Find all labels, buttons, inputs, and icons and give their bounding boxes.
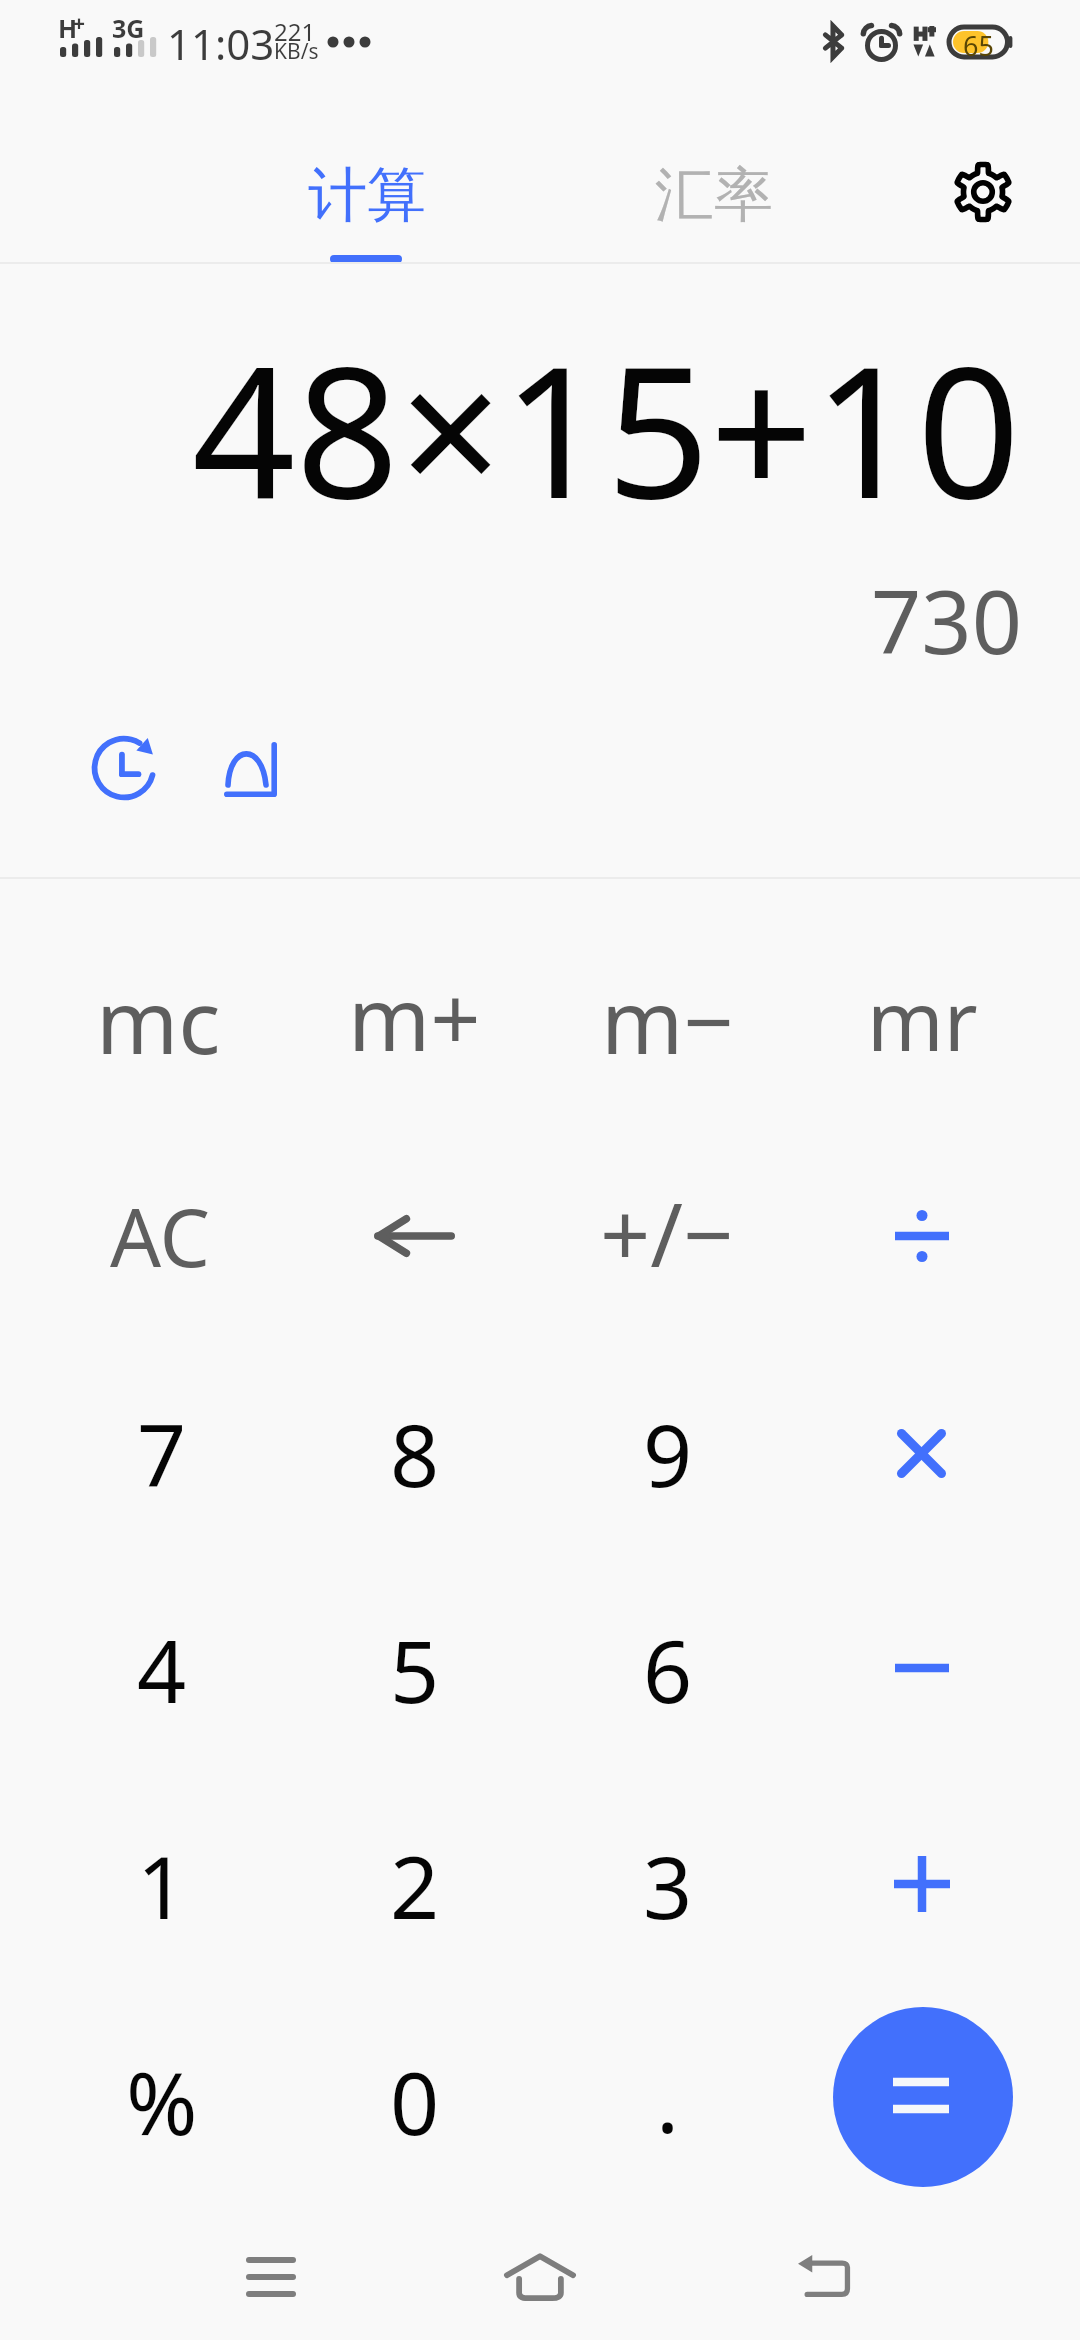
staticText: AC (110, 1181, 211, 1290)
button[interactable]: 0 (288, 1994, 541, 2208)
staticText: 9 (643, 1395, 693, 1512)
staticText: 7 (137, 1395, 187, 1512)
staticText: 1 (137, 1827, 187, 1944)
staticText: + (73, 9, 86, 38)
button[interactable]: 5 (288, 1562, 541, 1776)
staticText: . (656, 2041, 680, 2158)
staticText: mr (867, 963, 978, 1075)
staticText: 3G (112, 11, 145, 45)
button[interactable]: . (541, 1994, 794, 2208)
button[interactable]: 6 (541, 1562, 794, 1776)
staticText: H (58, 11, 78, 45)
button[interactable]: 汇率 (593, 104, 833, 284)
button[interactable]: 8 (288, 1346, 541, 1560)
button[interactable]: +/− (541, 1129, 794, 1343)
button[interactable]: Subtract (795, 1561, 1048, 1775)
staticText: 汇率 (655, 158, 773, 232)
staticText: 11:03 (167, 15, 275, 72)
button[interactable]: m+ (288, 922, 541, 1136)
staticText: KB/s (274, 37, 319, 66)
button[interactable]: Backspace (288, 1129, 541, 1343)
staticText: 4 (137, 1611, 187, 1728)
button[interactable]: mc (35, 922, 288, 1136)
button[interactable]: Recents (197, 2203, 345, 2340)
button[interactable]: Settings (925, 134, 1041, 250)
staticText: 730 (871, 560, 1023, 680)
staticText: m− (601, 960, 734, 1080)
staticText: 6 (643, 1611, 693, 1728)
button[interactable]: Multiply (795, 1346, 1048, 1560)
button[interactable]: Home (466, 2203, 614, 2340)
button[interactable]: 计算 (246, 104, 486, 284)
button[interactable]: Divide (795, 1129, 1048, 1343)
button[interactable]: mr (795, 922, 1048, 1136)
button[interactable]: m− (541, 922, 794, 1136)
staticText: 2 (390, 1827, 440, 1944)
button[interactable]: % (35, 1994, 288, 2208)
staticText: 65 (963, 27, 994, 57)
staticText: +/− (600, 1173, 734, 1293)
staticText: 221 (274, 15, 316, 48)
button[interactable]: Back (750, 2202, 898, 2340)
button[interactable]: 7 (35, 1346, 288, 1560)
button[interactable]: 9 (541, 1346, 794, 1560)
staticText: % (126, 2043, 198, 2160)
button[interactable]: 1 (35, 1778, 288, 1992)
staticText: m+ (348, 957, 481, 1077)
staticText: 8 (390, 1395, 440, 1512)
staticText: 5 (390, 1611, 440, 1728)
button[interactable]: 4 (35, 1562, 288, 1776)
button[interactable]: Graph (202, 721, 298, 817)
button[interactable]: Equals (833, 2007, 1013, 2187)
button[interactable]: History (76, 720, 172, 816)
staticText: mc (96, 960, 221, 1080)
button[interactable]: 3 (541, 1778, 794, 1992)
button[interactable]: Add (795, 1777, 1048, 1991)
button[interactable]: AC (35, 1129, 288, 1343)
staticText: 0 (390, 2043, 440, 2160)
staticText: 计算 (308, 158, 426, 232)
button[interactable]: 2 (288, 1778, 541, 1992)
staticText: 48×15+10 (192, 305, 1021, 552)
staticText: 3 (643, 1827, 693, 1944)
